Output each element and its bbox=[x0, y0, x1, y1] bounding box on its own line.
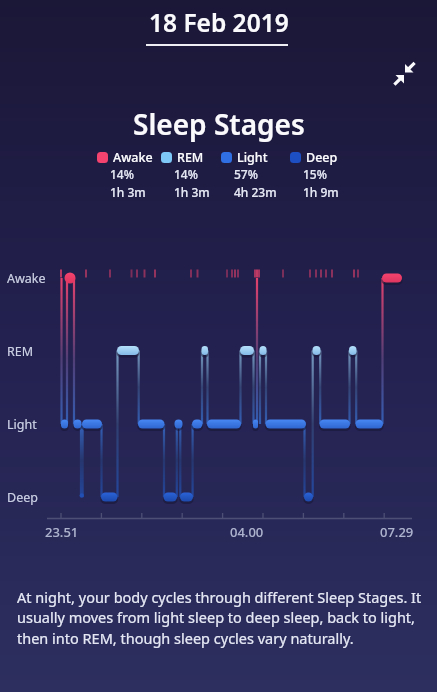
staticText: 23.51 bbox=[45, 523, 79, 541]
staticText: 15% bbox=[303, 166, 327, 182]
staticText: 04.00 bbox=[230, 523, 264, 541]
staticText: Awake bbox=[113, 149, 153, 166]
staticText: 07.29 bbox=[380, 523, 414, 541]
staticText: 14% bbox=[174, 166, 198, 182]
staticText: 57% bbox=[234, 166, 258, 182]
staticText: Light bbox=[237, 149, 268, 166]
staticText: Deep bbox=[7, 489, 38, 506]
staticText: Light bbox=[7, 416, 37, 433]
staticText: Deep bbox=[306, 149, 338, 166]
staticText: 4h 23m bbox=[234, 184, 277, 200]
staticText: Awake bbox=[7, 270, 46, 287]
staticText: REM bbox=[7, 343, 34, 360]
staticText: At night, your body cycles through diffe… bbox=[17, 587, 422, 649]
staticText: 1h 9m bbox=[303, 184, 339, 200]
button[interactable] bbox=[390, 58, 423, 91]
staticText: 14% bbox=[110, 166, 134, 182]
staticText: REM bbox=[177, 149, 204, 166]
staticText: Sleep Stages bbox=[133, 105, 305, 143]
staticText: 18 Feb 2019 bbox=[149, 6, 289, 39]
staticText: 1h 3m bbox=[110, 184, 146, 200]
staticText: 1h 3m bbox=[174, 184, 210, 200]
